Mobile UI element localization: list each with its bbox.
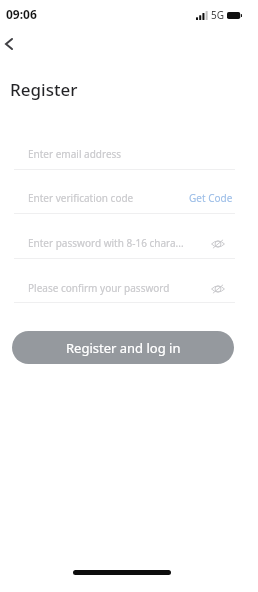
- button[interactable]: Back: [0, 31, 22, 57]
- button[interactable]: Please confirm your password: [14, 270, 235, 303]
- button[interactable]: Get Code: [191, 185, 235, 211]
- staticText: Get Code: [189, 191, 233, 205]
- staticText: 5G: [211, 8, 224, 22]
- staticText: Enter verification code: [28, 191, 134, 205]
- button[interactable]: Show password: [207, 230, 235, 256]
- staticText: Register: [10, 78, 78, 101]
- staticText: Enter password with 8-16 chara...: [28, 236, 184, 250]
- staticText: Please confirm your password: [28, 281, 170, 295]
- staticText: Enter email address: [28, 147, 122, 161]
- button[interactable]: Show password: [207, 275, 235, 301]
- staticText: Register and log in: [66, 339, 181, 357]
- staticText: 09:06: [6, 6, 37, 22]
- button[interactable]: Enter email address: [14, 137, 235, 170]
- button[interactable]: Enter password with 8-16 chara...: [14, 226, 235, 259]
- button[interactable]: Enter verification code: [14, 181, 235, 214]
- button[interactable]: Register and log in: [12, 331, 234, 364]
